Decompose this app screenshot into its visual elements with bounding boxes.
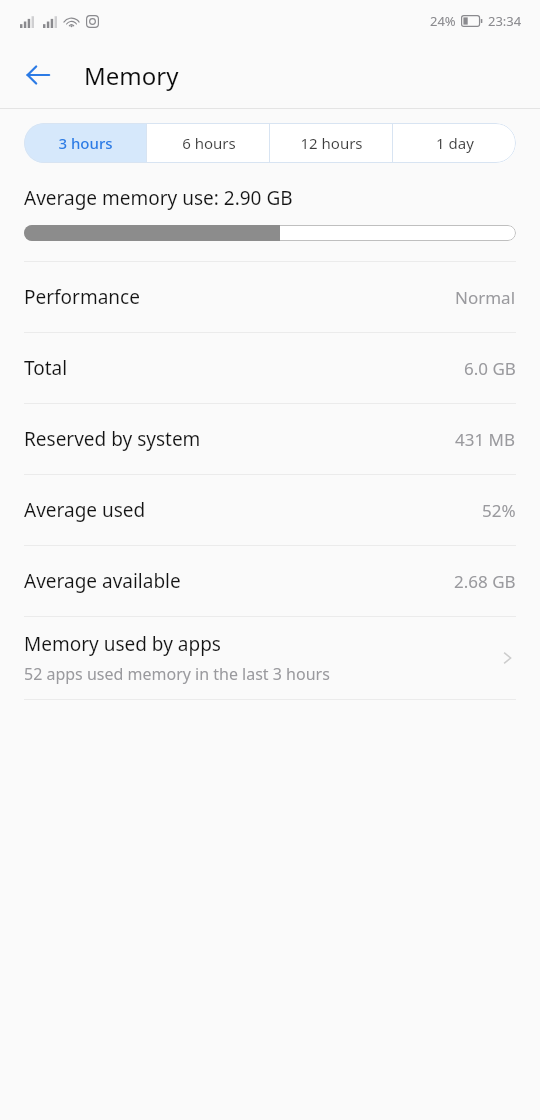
staticText: 12 hours — [300, 133, 363, 153]
staticText: Memory used by apps — [24, 631, 221, 657]
button[interactable]: Memory used by apps — [0, 617, 540, 699]
staticText: Total — [24, 355, 68, 381]
staticText: 431 MB — [455, 428, 516, 451]
staticText: Reserved by system — [24, 426, 201, 452]
staticText: Memory — [84, 59, 179, 92]
staticText: 24% — [430, 12, 456, 30]
staticText: 52% — [482, 499, 516, 522]
button[interactable]: Back — [12, 49, 64, 101]
button[interactable]: Average used — [0, 475, 540, 545]
staticText: Average used — [24, 497, 146, 523]
staticText: Normal — [455, 286, 516, 309]
staticText: 3 hours — [58, 133, 113, 153]
staticText: 2.68 GB — [454, 570, 516, 593]
staticText: Average memory use: 2.90 GB — [24, 185, 293, 211]
button[interactable]: 6 hours — [147, 123, 270, 163]
button[interactable]: 1 day — [393, 123, 516, 163]
staticText: 6 hours — [182, 133, 236, 153]
button[interactable]: Average available — [0, 546, 540, 616]
staticText: 6.0 GB — [464, 357, 516, 380]
staticText: 1 day — [436, 133, 474, 153]
staticText: Average available — [24, 568, 181, 594]
button[interactable]: Total — [0, 333, 540, 403]
staticText: 52 apps used memory in the last 3 hours — [24, 663, 330, 685]
staticText: Performance — [24, 284, 140, 310]
button[interactable]: 3 hours — [24, 123, 147, 163]
button[interactable]: Reserved by system — [0, 404, 540, 474]
staticText: 23:34 — [488, 12, 522, 30]
button[interactable]: Performance — [0, 262, 540, 332]
button[interactable]: 12 hours — [270, 123, 393, 163]
